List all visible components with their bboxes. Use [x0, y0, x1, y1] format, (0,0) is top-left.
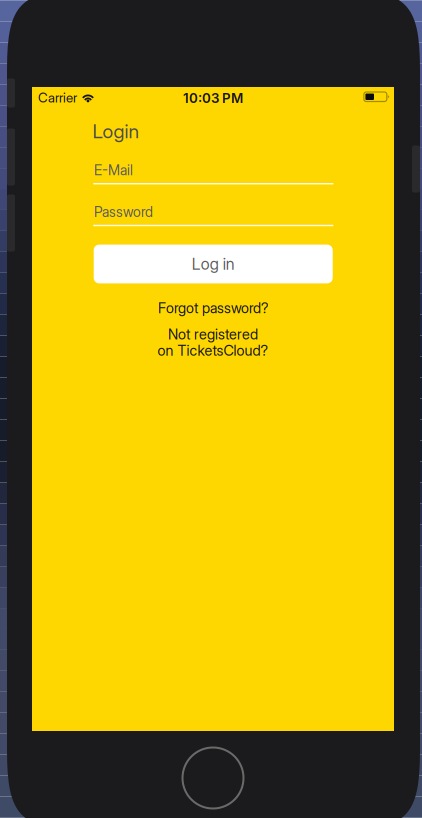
button[interactable]: Not registered — [32, 325, 394, 359]
staticText: 10:03 PM — [183, 90, 243, 106]
staticText: Not registered — [168, 325, 258, 343]
staticText: Carrier — [38, 90, 77, 106]
staticText: Password — [94, 203, 153, 220]
staticText: Forgot password? — [158, 299, 268, 317]
button[interactable]: Forgot password? — [32, 299, 394, 317]
staticText: E-Mail — [94, 162, 133, 178]
staticText: Login — [93, 120, 140, 143]
button[interactable]: Log in — [94, 245, 333, 283]
staticText: on TicketsCloud? — [157, 342, 268, 359]
staticText: Log in — [192, 254, 235, 274]
